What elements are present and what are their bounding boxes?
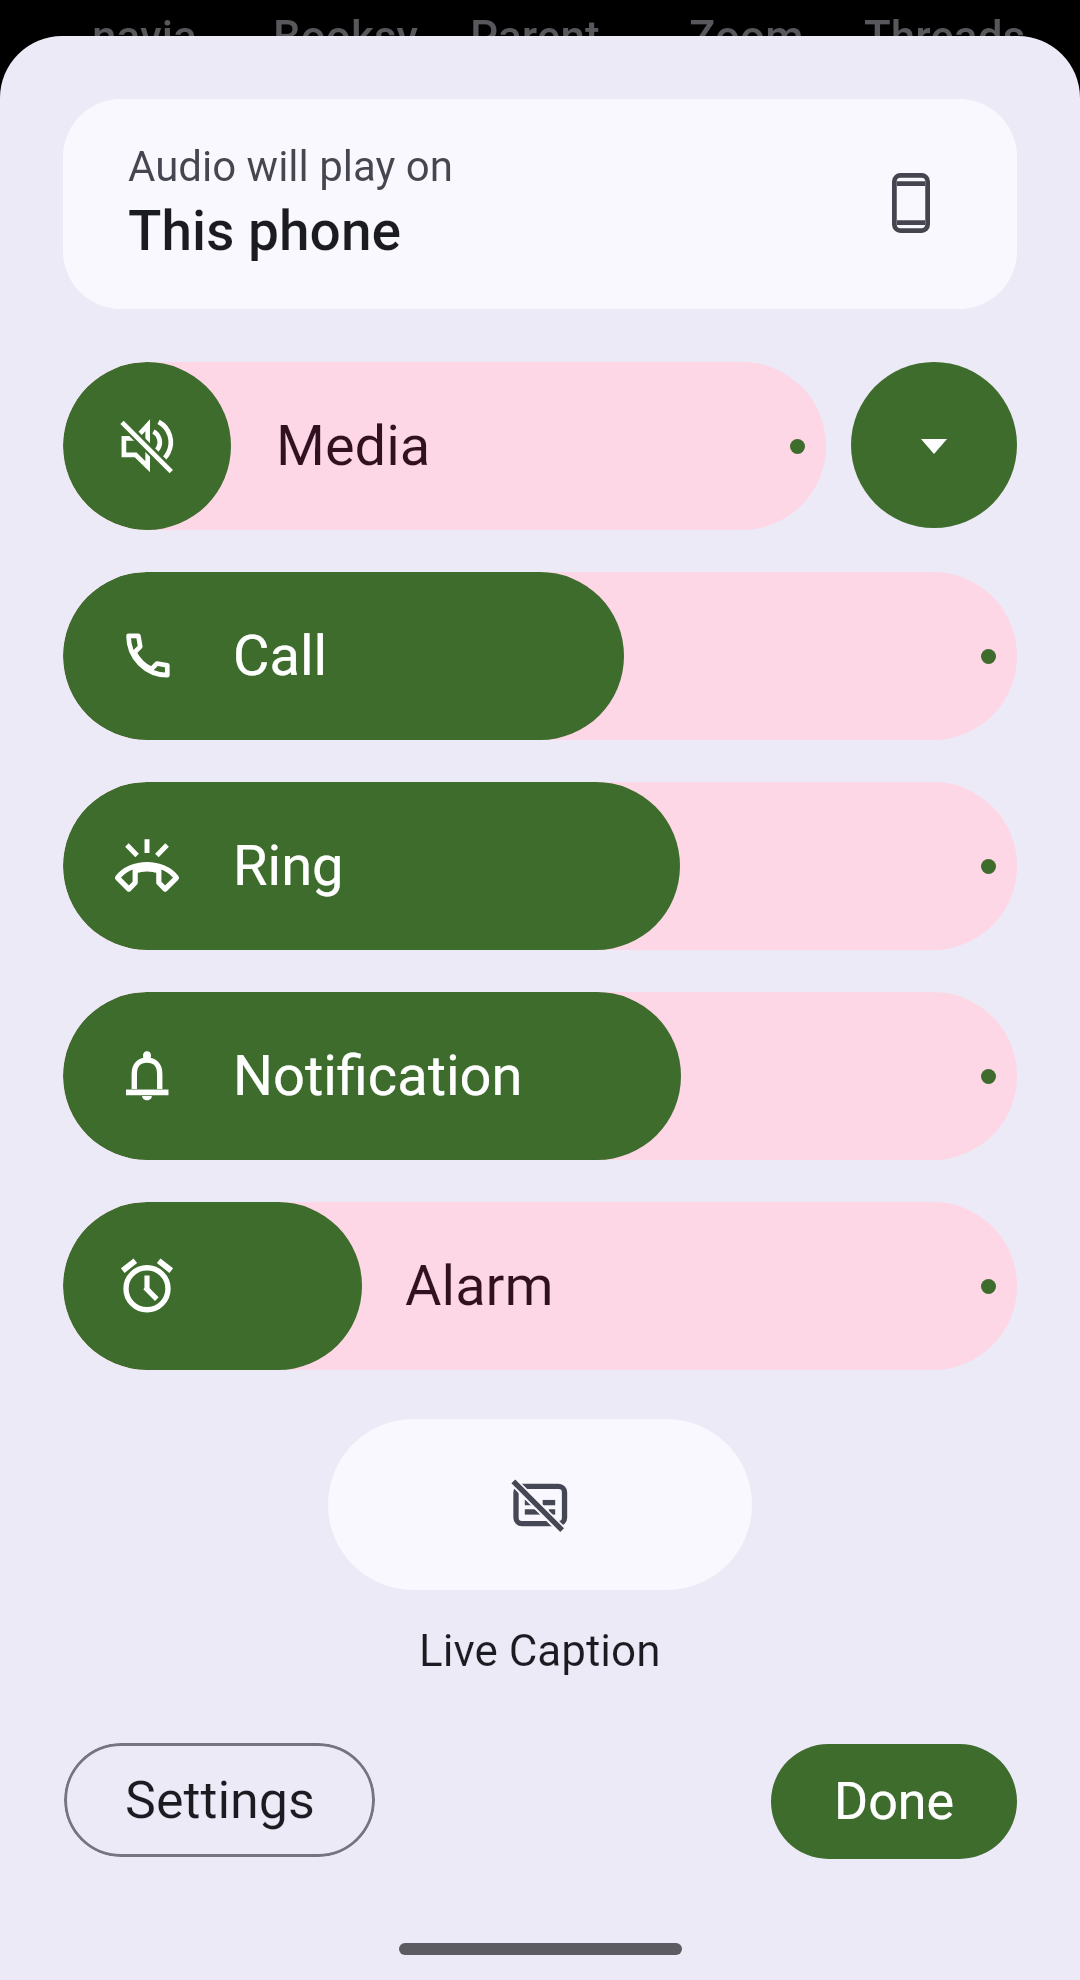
- staticText: Notification: [233, 1043, 523, 1109]
- button[interactable]: Expand media output options: [851, 362, 1017, 528]
- staticText: Settings: [125, 1770, 315, 1831]
- button[interactable]: Live Caption: [328, 1419, 752, 1590]
- staticText: Zoom: [689, 11, 804, 63]
- staticText: Ring: [233, 833, 344, 899]
- button[interactable]: Call volume: [63, 572, 1017, 740]
- staticText: Audio will play on: [128, 142, 453, 191]
- button[interactable]: Settings: [64, 1743, 375, 1857]
- button[interactable]: Audio will play on: [63, 99, 1017, 309]
- staticText: Parent: [470, 11, 600, 63]
- staticText: Booksy: [273, 11, 418, 63]
- button[interactable]: Alarm volume: [63, 1202, 1017, 1370]
- staticText: navia: [92, 11, 197, 63]
- button[interactable]: Media volume: [63, 362, 826, 530]
- staticText: Threads: [864, 11, 1026, 63]
- staticText: This phone: [128, 199, 402, 263]
- button[interactable]: Notification volume: [63, 992, 1017, 1160]
- staticText: Call: [233, 623, 328, 689]
- other: This phone: [892, 173, 930, 233]
- button[interactable]: Ring volume: [63, 782, 1017, 950]
- staticText: Done: [834, 1771, 955, 1832]
- staticText: Live Caption: [419, 1625, 661, 1677]
- button[interactable]: Done: [771, 1744, 1017, 1859]
- staticText: Alarm: [405, 1253, 554, 1319]
- staticText: Media: [276, 413, 431, 479]
